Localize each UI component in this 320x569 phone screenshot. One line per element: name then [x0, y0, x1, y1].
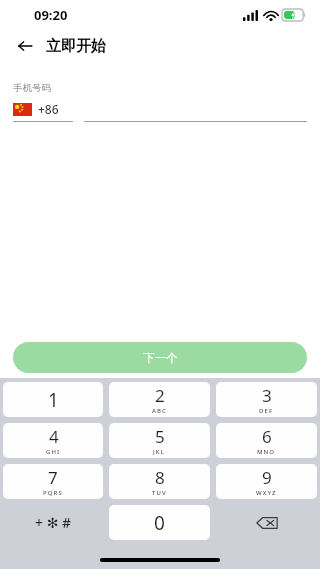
staticText: 09:20 — [34, 6, 68, 24]
staticText: 5 — [155, 425, 165, 448]
staticText: WXYZ — [256, 489, 277, 497]
staticText: 4 — [49, 425, 59, 448]
staticText: GHI — [46, 448, 61, 456]
staticText: JKL — [153, 448, 166, 456]
staticText: 9 — [262, 466, 272, 489]
button[interactable]: Symbols — [3, 505, 103, 540]
staticText: + ✻ # — [35, 513, 72, 532]
staticText: 1 — [48, 387, 59, 413]
staticText: TUV — [152, 489, 167, 497]
button[interactable]: 4 — [3, 423, 103, 458]
staticText: 6 — [262, 425, 272, 448]
staticText: PQRS — [43, 489, 63, 497]
staticText: 8 — [155, 466, 165, 489]
button[interactable]: 下一个 — [13, 342, 307, 373]
staticText: DEF — [259, 407, 274, 415]
staticText: 立即开始 — [46, 37, 106, 56]
staticText: MNO — [257, 448, 276, 456]
button[interactable]: 0 — [109, 505, 210, 540]
staticText: 7 — [48, 466, 58, 489]
staticText: +86 — [38, 101, 59, 117]
button[interactable]: 1 — [3, 382, 103, 417]
staticText: 2 — [155, 384, 165, 407]
button[interactable]: 6 — [216, 423, 317, 458]
button[interactable]: 9 — [216, 464, 317, 499]
button[interactable]: 8 — [109, 464, 210, 499]
staticText: 3 — [262, 384, 272, 407]
button[interactable]: 3 — [216, 382, 317, 417]
button[interactable]: 5 — [109, 423, 210, 458]
button[interactable]: Back — [10, 31, 40, 61]
staticText: ABC — [152, 407, 167, 415]
button[interactable]: 7 — [3, 464, 103, 499]
staticText: 手机号码 — [13, 82, 51, 94]
staticText: 0 — [154, 510, 165, 536]
button[interactable]: 2 — [109, 382, 210, 417]
staticText: 下一个 — [143, 351, 178, 365]
button[interactable]: Backspace — [216, 505, 317, 540]
button[interactable]: +86 — [13, 101, 73, 117]
